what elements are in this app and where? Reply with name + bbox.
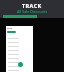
button[interactable] <box>8 64 20 68</box>
staticText: All Sale Discounts <box>17 9 48 14</box>
button[interactable] <box>8 52 20 56</box>
button[interactable] <box>8 40 20 44</box>
button[interactable] <box>8 56 20 60</box>
button[interactable] <box>8 68 20 72</box>
staticText: TRACK <box>22 2 42 9</box>
button[interactable] <box>8 44 20 48</box>
button[interactable] <box>8 60 20 64</box>
button[interactable] <box>7 31 16 33</box>
button[interactable] <box>8 48 20 52</box>
button[interactable]: Add discount <box>18 62 23 67</box>
button[interactable] <box>8 36 20 40</box>
